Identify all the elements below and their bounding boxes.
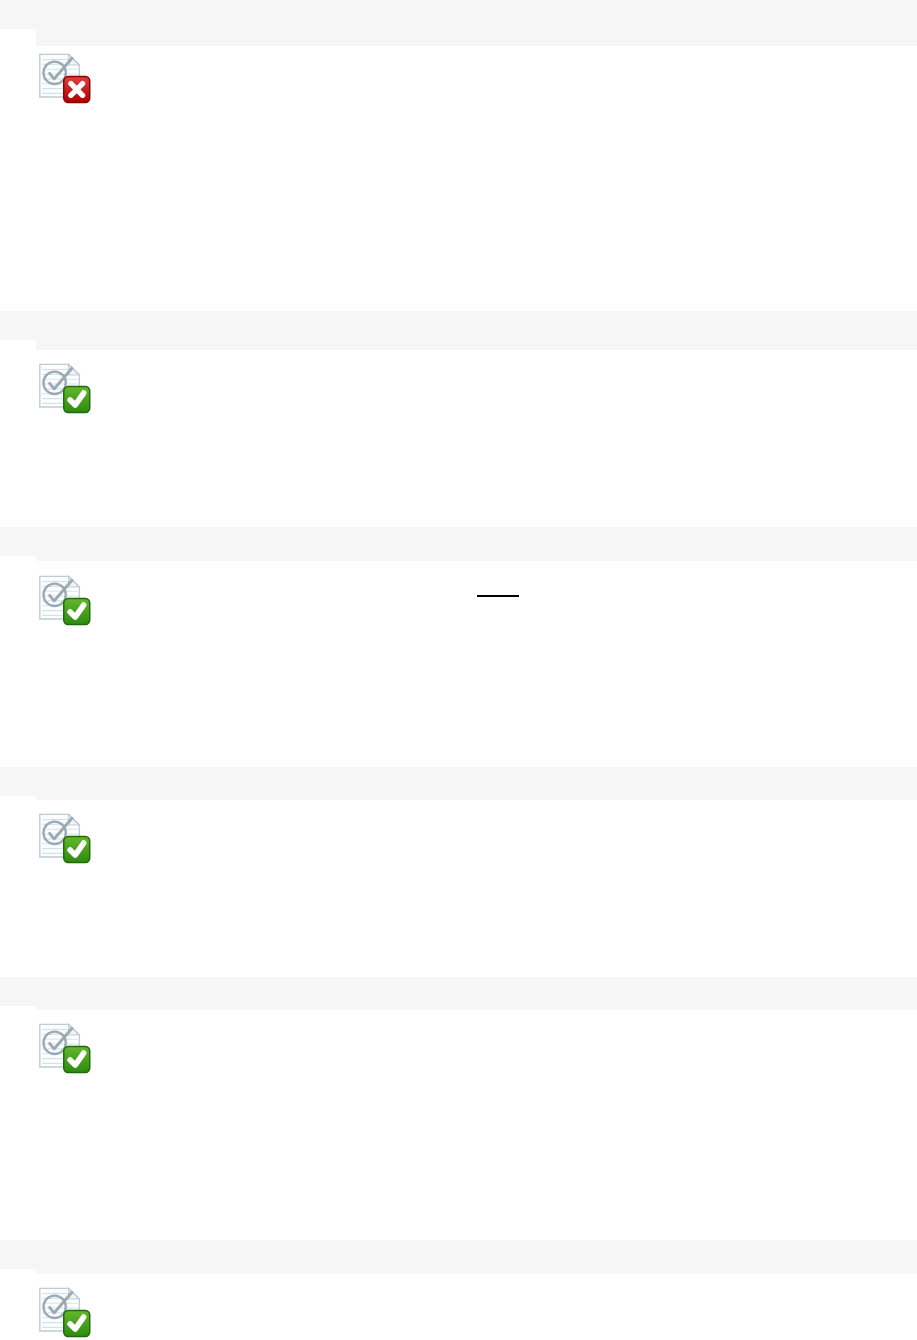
button[interactable]: Validation passed — [38, 1022, 90, 1074]
button[interactable]: Validation passed — [38, 812, 90, 864]
button[interactable]: Validation passed — [38, 362, 90, 414]
button[interactable]: Validation passed — [38, 1286, 90, 1338]
button[interactable]: Validation passed — [38, 574, 90, 626]
button[interactable]: Validation failed — [38, 52, 90, 104]
